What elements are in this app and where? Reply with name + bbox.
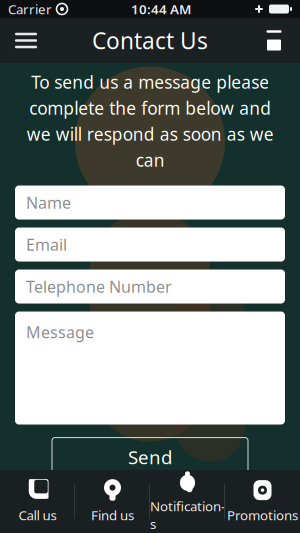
staticText: Message [26,321,94,343]
button[interactable]: Find us [75,470,150,533]
button[interactable]: Notifications [150,470,225,533]
staticText: 10:44 AM [131,0,191,18]
button[interactable]: Call us [0,470,75,533]
button[interactable]: Send [52,437,248,476]
staticText: Send [128,445,172,469]
staticText: Find us [91,506,134,524]
staticText: Notifications [150,497,225,533]
button[interactable]: Promotions [225,470,300,533]
button[interactable]: Menu [4,18,48,63]
staticText: Email [26,234,67,255]
staticText: Contact Us [92,25,208,55]
staticText: Promotions [227,506,298,524]
staticText: Name [26,192,71,213]
staticText: Telephone Number [26,276,172,297]
staticText: Carrier [8,0,52,18]
staticText: Call us [18,506,56,524]
staticText: To send us a message please complete the… [26,70,273,172]
button[interactable]: Home [252,18,296,63]
